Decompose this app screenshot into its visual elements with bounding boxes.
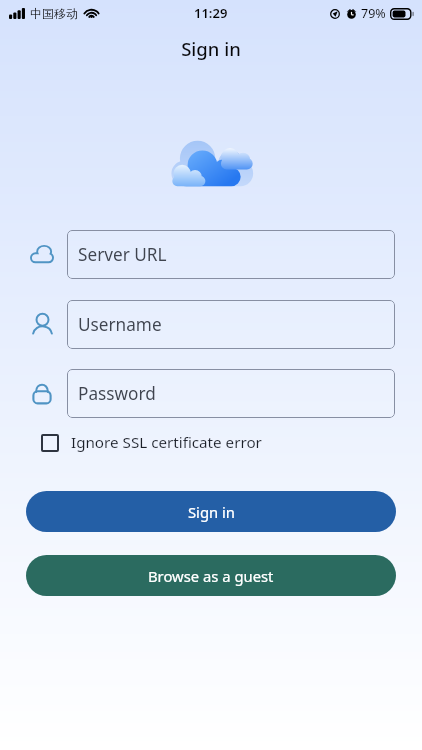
other: Server URL — [30, 241, 54, 267]
staticText: Password — [78, 382, 156, 405]
staticText: 79% — [361, 5, 386, 22]
button[interactable]: Password — [67, 369, 395, 418]
staticText: Browse as a guest — [148, 566, 274, 586]
other: Username — [30, 311, 54, 337]
staticText: Server URL — [78, 243, 167, 266]
staticText: Sign in — [0, 36, 422, 61]
staticText: Ignore SSL certificate error — [71, 432, 262, 453]
button[interactable]: Sign in — [26, 491, 396, 532]
button[interactable]: Ignore SSL certificate error — [34, 425, 272, 460]
staticText: 11:29 — [194, 4, 228, 22]
staticText: 中国移动 — [30, 6, 78, 21]
other: Password — [30, 380, 54, 406]
button[interactable]: Username — [67, 300, 395, 349]
staticText: Username — [78, 313, 162, 336]
staticText: Sign in — [188, 502, 235, 522]
button[interactable]: Browse as a guest — [26, 555, 396, 596]
button[interactable]: Server URL — [67, 230, 395, 279]
